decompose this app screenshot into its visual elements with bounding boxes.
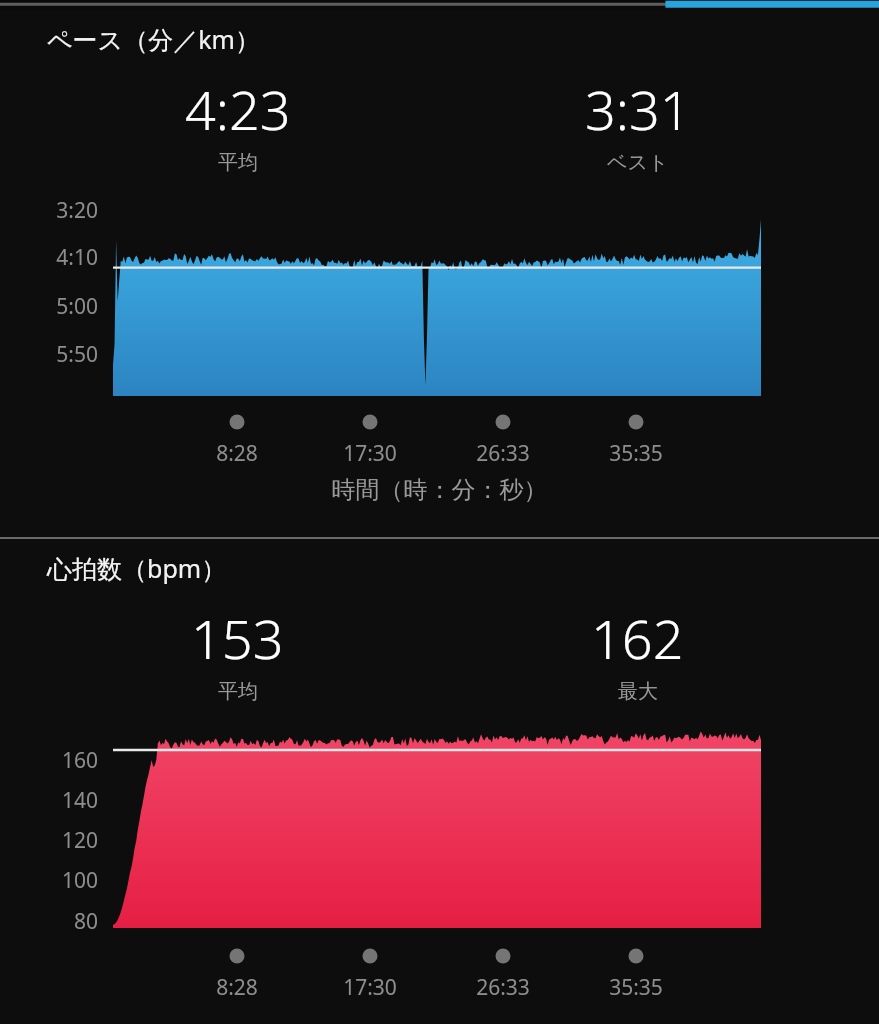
staticText: 平均 (218, 150, 258, 175)
staticText: 26:33 (443, 439, 563, 468)
staticText: 17:30 (310, 439, 430, 468)
staticText: 4:10 (18, 243, 98, 272)
staticText: 26:33 (443, 973, 563, 1002)
staticText: 153 (191, 601, 284, 675)
staticText: 5:00 (18, 292, 98, 321)
button[interactable]: 162 (520, 601, 755, 704)
button[interactable]: 153 (120, 601, 355, 704)
staticText: 162 (591, 601, 684, 675)
staticText: 17:30 (310, 973, 430, 1002)
staticText: 140 (18, 786, 98, 815)
staticText: 最大 (618, 679, 658, 704)
staticText: 35:35 (576, 973, 696, 1002)
other: Page progress (0, 0, 879, 10)
staticText: 100 (18, 866, 98, 895)
staticText: 35:35 (576, 439, 696, 468)
button[interactable]: 3:31 (520, 72, 755, 175)
staticText: 8:28 (177, 973, 297, 1002)
staticText: 8:28 (177, 439, 297, 468)
staticText: 80 (18, 907, 98, 936)
staticText: 3:20 (18, 196, 98, 225)
staticText: 心拍数（bpm） (47, 551, 227, 585)
staticText: 3:31 (585, 72, 691, 146)
staticText: 時間（時：分：秒） (0, 475, 879, 505)
staticText: ペース（分／km） (47, 22, 260, 56)
button[interactable]: 4:23 (120, 72, 355, 175)
button[interactable]: ペース（分／km） (0, 10, 879, 537)
staticText: 4:23 (185, 72, 291, 146)
staticText: ベスト (607, 150, 669, 175)
staticText: 160 (18, 746, 98, 775)
staticText: 120 (18, 826, 98, 855)
staticText: 5:50 (18, 340, 98, 369)
button[interactable]: 心拍数（bpm） (0, 539, 879, 1024)
staticText: 平均 (218, 679, 258, 704)
